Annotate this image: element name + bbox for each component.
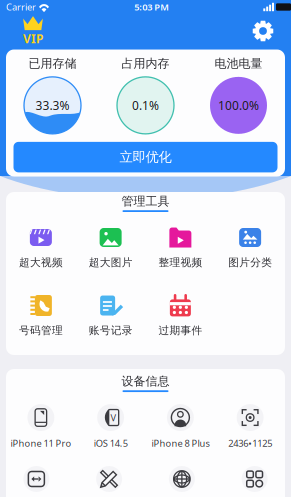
staticText: iOS 14.5 xyxy=(94,437,128,449)
staticText: iPhone 11 Pro xyxy=(10,437,71,449)
staticText: 5:03 PM xyxy=(134,1,169,13)
staticText: 图片分类 xyxy=(228,256,272,269)
staticText: 立即优化 xyxy=(119,149,171,165)
staticText: 占用内存 xyxy=(121,56,169,71)
button[interactable]: Edit xyxy=(73,458,145,497)
staticText: 0.1% xyxy=(132,97,159,113)
staticText: 过期事件 xyxy=(158,324,202,337)
button[interactable]: 号码管理 xyxy=(6,294,75,341)
staticText: 管理工具 xyxy=(121,194,169,209)
button[interactable]: Settings xyxy=(248,16,278,46)
button[interactable]: 超大图片 xyxy=(76,226,145,273)
staticText: VIP xyxy=(23,30,43,46)
staticText: 号码管理 xyxy=(19,324,63,337)
button[interactable]: More xyxy=(219,458,291,497)
staticText: 整理视频 xyxy=(158,256,202,269)
staticText: 已用存储 xyxy=(28,56,76,71)
button[interactable]: 立即优化 xyxy=(13,142,277,172)
button[interactable]: 整理视频 xyxy=(146,226,215,273)
staticText: V xyxy=(110,411,116,424)
staticText: 33.3% xyxy=(35,97,69,113)
staticText: 账号记录 xyxy=(89,324,133,337)
button[interactable]: Resize xyxy=(0,458,72,497)
button[interactable]: 过期事件 xyxy=(146,294,215,341)
staticText: 设备信息 xyxy=(121,374,169,389)
staticText: iPhone 8 Plus xyxy=(151,437,209,449)
staticText: 2436•1125 xyxy=(228,437,272,449)
button[interactable]: Web xyxy=(146,458,218,497)
staticText: 超大图片 xyxy=(89,256,133,269)
staticText: 电池电量 xyxy=(214,56,262,71)
button[interactable]: 账号记录 xyxy=(76,294,145,341)
button[interactable]: 图片分类 xyxy=(216,226,285,273)
staticText: 超大视频 xyxy=(19,256,63,269)
button[interactable]: VIP xyxy=(13,16,53,46)
button[interactable]: 超大视频 xyxy=(6,226,75,273)
staticText: 100.0% xyxy=(218,97,259,113)
staticText: Carrier xyxy=(6,1,36,13)
